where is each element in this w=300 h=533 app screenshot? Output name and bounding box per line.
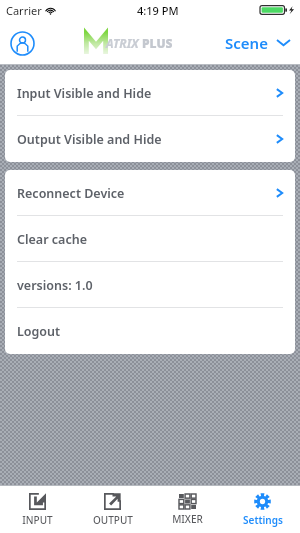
- staticText: PLUS: [142, 35, 173, 51]
- staticText: Carrier: [6, 3, 42, 18]
- button[interactable]: Account: [0, 21, 44, 65]
- staticText: Logout: [17, 323, 61, 340]
- button[interactable]: Reconnect Device: [5, 170, 295, 216]
- staticText: Reconnect Device: [17, 185, 125, 202]
- staticText: OUTPUT: [93, 513, 133, 527]
- staticText: Scene: [225, 33, 268, 53]
- staticText: Settings: [243, 513, 283, 527]
- staticText: INPUT: [22, 513, 53, 527]
- staticText: 4:19 PM: [137, 3, 179, 18]
- staticText: Clear cache: [17, 231, 87, 248]
- staticText: ATRIX: [106, 35, 139, 51]
- staticText: Output Visible and Hide: [17, 131, 162, 148]
- button[interactable]: Input Visible and Hide: [5, 70, 295, 116]
- button[interactable]: Settings: [225, 486, 300, 533]
- button[interactable]: OUTPUT: [75, 486, 150, 533]
- button[interactable]: Logout: [5, 308, 295, 354]
- button[interactable]: versions: 1.0: [5, 262, 295, 308]
- button[interactable]: Scene: [215, 20, 300, 65]
- staticText: Input Visible and Hide: [17, 85, 152, 102]
- button[interactable]: Output Visible and Hide: [5, 116, 295, 162]
- staticText: versions: 1.0: [17, 277, 93, 294]
- staticText: MIXER: [172, 512, 203, 526]
- button[interactable]: MIXER: [150, 486, 225, 533]
- button[interactable]: INPUT: [0, 486, 75, 533]
- button[interactable]: Clear cache: [5, 216, 295, 262]
